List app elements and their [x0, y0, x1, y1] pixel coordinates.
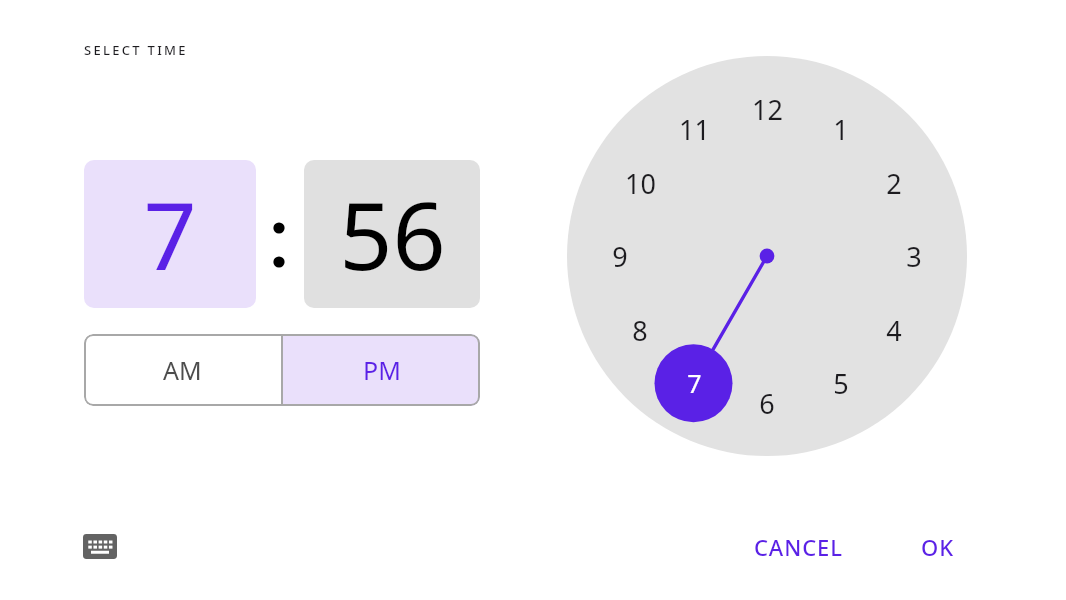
- button[interactable]: 56: [304, 160, 480, 308]
- staticText: 56: [339, 171, 446, 298]
- staticText: 1: [833, 111, 849, 148]
- staticText: 5: [833, 365, 849, 402]
- staticText: SELECT TIME: [84, 41, 188, 59]
- button[interactable]: CANCEL: [732, 524, 864, 570]
- button[interactable]: 1: [812, 106, 870, 152]
- button[interactable]: 8: [611, 307, 669, 353]
- button[interactable]: 10: [611, 160, 669, 206]
- staticText: PM: [363, 353, 401, 387]
- staticText: OK: [921, 532, 954, 562]
- staticText: 7: [687, 366, 702, 400]
- staticText: 9: [612, 238, 628, 275]
- button[interactable]: 11: [665, 106, 723, 152]
- staticText: AM: [163, 353, 202, 387]
- button[interactable]: 7: [84, 160, 256, 308]
- staticText: 2: [886, 165, 902, 202]
- button[interactable]: OK: [902, 524, 972, 570]
- button[interactable]: 3: [885, 233, 943, 279]
- button[interactable]: 12: [738, 86, 796, 132]
- button[interactable]: 9: [591, 233, 649, 279]
- button[interactable]: Switch to text input: [73, 519, 127, 573]
- staticText: 11: [679, 111, 710, 148]
- staticText: 12: [752, 91, 783, 128]
- button[interactable]: 2: [865, 160, 923, 206]
- staticText: CANCEL: [754, 532, 843, 562]
- button[interactable]: 4: [865, 307, 923, 353]
- staticText: 4: [886, 312, 902, 349]
- button[interactable]: AM: [84, 334, 281, 406]
- staticText: 10: [625, 165, 656, 202]
- staticText: 7: [143, 171, 197, 298]
- button[interactable]: 5: [812, 360, 870, 406]
- staticText: 3: [906, 238, 922, 275]
- button[interactable]: 7: [665, 360, 723, 406]
- staticText: 6: [759, 385, 775, 422]
- button[interactable]: 6: [738, 380, 796, 426]
- staticText: 8: [632, 312, 648, 349]
- button[interactable]: PM: [283, 334, 480, 406]
